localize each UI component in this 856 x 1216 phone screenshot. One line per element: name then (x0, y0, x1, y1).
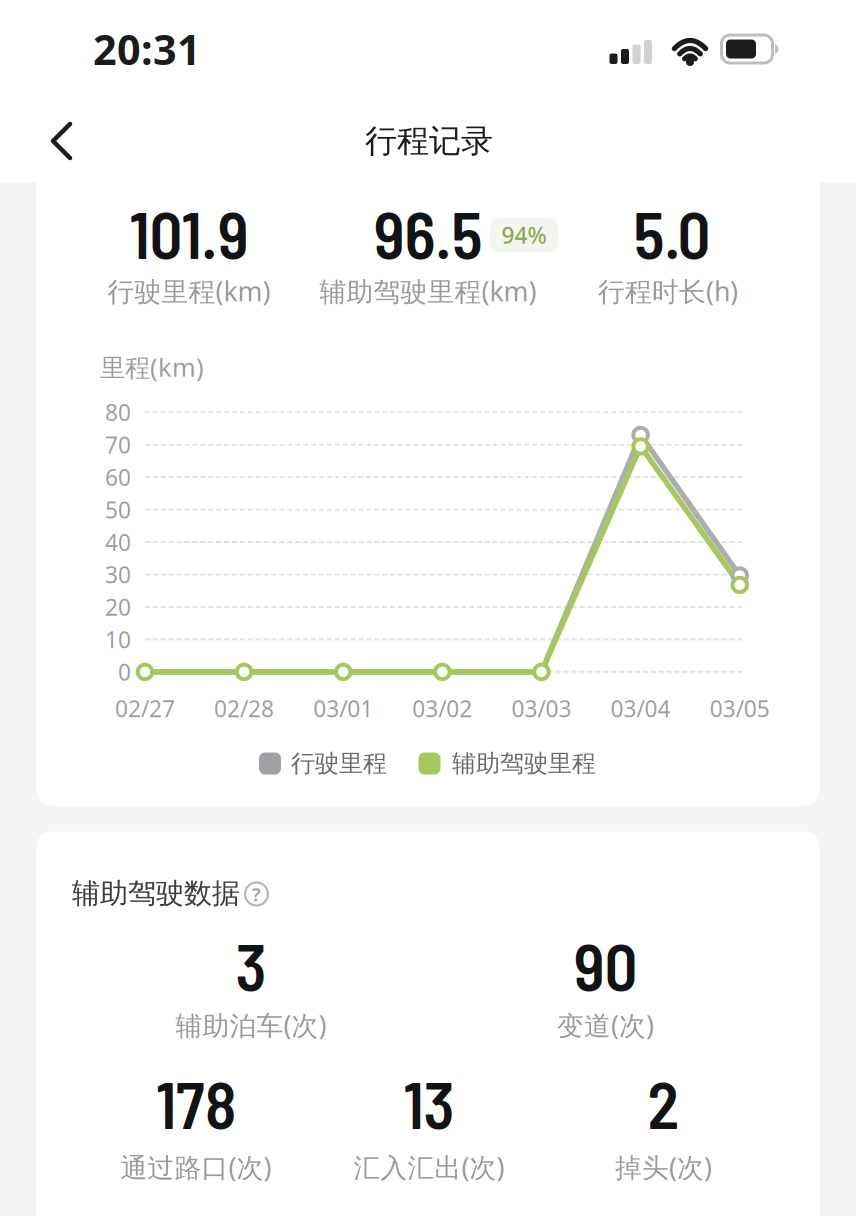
staticText: 03/05 (710, 693, 770, 723)
staticText: 101.9 (129, 194, 248, 272)
staticText: 汇入汇出(次) (353, 1149, 504, 1185)
staticText: 行程时长(h) (598, 273, 738, 309)
staticText: 03/03 (511, 693, 571, 723)
staticText: 60 (105, 462, 131, 492)
staticText: 20 (105, 592, 131, 622)
staticText: 03/01 (313, 693, 373, 723)
staticText: 辅助驾驶数据 (72, 876, 240, 911)
button[interactable]: Help (241, 879, 271, 909)
staticText: 50 (105, 495, 131, 525)
staticText: 掉头(次) (615, 1149, 712, 1185)
staticText: 辅助泊车(次) (175, 1007, 326, 1043)
button[interactable]: Back (40, 120, 84, 162)
staticText: 辅助驾驶里程 (452, 749, 596, 778)
staticText: 03/04 (611, 693, 671, 723)
staticText: 70 (105, 430, 131, 460)
staticText: 辅助驾驶里程(km) (319, 273, 536, 309)
staticText: 178 (156, 1064, 236, 1142)
staticText: 40 (105, 527, 131, 557)
staticText: 里程(km) (100, 350, 204, 384)
staticText: 80 (105, 397, 131, 427)
staticText: 94% (501, 220, 546, 250)
staticText: 3 (235, 926, 266, 1004)
staticText: 30 (105, 559, 131, 590)
staticText: 10 (105, 624, 131, 654)
staticText: 变道(次) (557, 1007, 654, 1043)
staticText: 2 (647, 1064, 679, 1142)
staticText: 96.5 (373, 194, 482, 272)
staticText: 行驶里程(km) (107, 273, 270, 309)
staticText: 02/27 (115, 693, 175, 723)
staticText: 行驶里程 (291, 749, 387, 778)
staticText: 5.0 (633, 194, 710, 272)
staticText: 03/02 (412, 693, 472, 723)
staticText: 90 (573, 926, 637, 1004)
staticText: 行程记录 (365, 121, 493, 161)
staticText: 13 (403, 1064, 454, 1142)
staticText: 02/28 (214, 693, 274, 723)
staticText: 0 (118, 657, 131, 687)
staticText: 20:31 (93, 22, 201, 76)
staticText: ? (252, 882, 261, 906)
staticText: 通过路口(次) (120, 1149, 271, 1185)
